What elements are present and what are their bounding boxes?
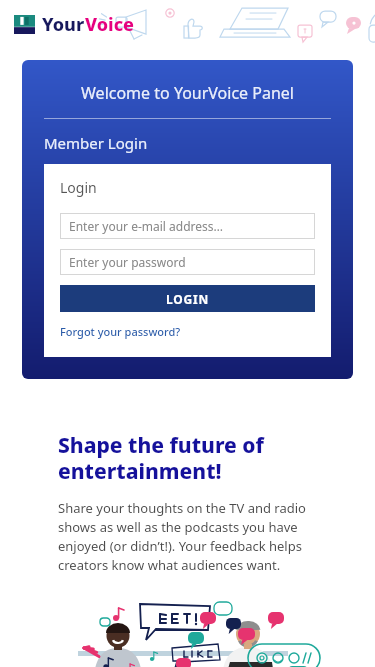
staticText: Your [42, 12, 85, 37]
staticText: Voice [85, 12, 135, 37]
button[interactable]: Forgot your password? [60, 324, 181, 339]
staticText: Login [60, 178, 97, 197]
staticText: Share your thoughts on the TV and radio … [58, 499, 317, 574]
staticText: Shape the future of entertainment! [58, 431, 317, 485]
staticText: Welcome to YourVoice Panel [22, 82, 353, 104]
button[interactable]: LOGIN [60, 285, 315, 312]
staticText: Enter your password [69, 254, 186, 270]
button[interactable]: Enter your password [60, 249, 315, 275]
button[interactable]: Enter your e-mail address… [60, 213, 315, 239]
staticText: Member Login [44, 133, 148, 153]
staticText: Enter your e-mail address… [69, 218, 223, 234]
staticText: LOGIN [166, 291, 210, 307]
button[interactable]: YourVoice by Ipsos home [14, 12, 135, 37]
